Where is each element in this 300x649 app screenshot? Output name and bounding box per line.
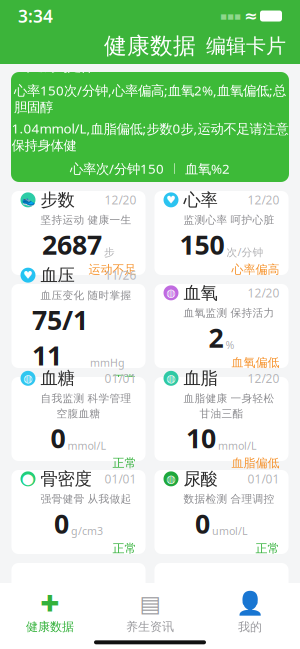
staticText: 全身检查 <box>40 582 108 604</box>
staticText: 0 <box>195 506 210 541</box>
staticText: 步数 <box>40 189 74 210</box>
button[interactable]: ◍ <box>154 377 288 461</box>
staticText: 10 <box>186 420 216 456</box>
staticText: 正常 <box>112 541 136 556</box>
staticText: 01/01 <box>104 471 136 487</box>
button[interactable]: ♥ <box>11 284 145 368</box>
staticText: 正常 <box>112 456 136 470</box>
staticText: ◍ <box>23 372 32 384</box>
staticText: 健康数据 <box>26 619 74 634</box>
staticText: 正常 <box>255 541 279 556</box>
staticText: 正常 <box>112 373 136 387</box>
staticText: 12/20 <box>104 192 136 208</box>
staticText: 血氧%2 <box>185 160 230 177</box>
staticText: 健康数据 <box>104 32 196 60</box>
staticText: 150 <box>179 227 224 262</box>
staticText: 数据检测 合理调控 <box>183 492 274 506</box>
button[interactable] <box>154 563 288 603</box>
staticText: ♥ <box>166 194 176 206</box>
button[interactable]: ▤ <box>100 585 200 640</box>
staticText: mmHg <box>90 356 125 370</box>
staticText: 坚持运动 健康一生 <box>40 213 131 227</box>
staticText: 👟 <box>21 194 34 206</box>
staticText: ▪▪▪ <box>220 10 241 22</box>
staticText: 心率次/分钟150 <box>70 160 164 177</box>
staticText: 0 <box>50 420 65 456</box>
staticText: 3:34 <box>18 4 53 27</box>
staticText: ✚ <box>40 591 59 616</box>
button[interactable]: ⬤ <box>11 470 145 554</box>
staticText: 心率 <box>183 189 217 210</box>
staticText: 2687 <box>42 227 102 262</box>
button[interactable]: 全身检查 <box>11 563 145 603</box>
staticText: 血脂 <box>183 368 217 389</box>
staticText: ♥ <box>23 269 33 281</box>
staticText: 12/20 <box>247 370 279 386</box>
button[interactable]: ◍ <box>154 470 288 554</box>
staticText: 01/01 <box>104 370 136 386</box>
button[interactable]: 编辑卡片 <box>192 28 300 64</box>
staticText: % <box>225 338 234 352</box>
staticText: 我的 <box>238 620 262 634</box>
staticText: ≈ <box>244 7 257 25</box>
staticText: 骨密度 <box>40 468 91 489</box>
staticText: 编辑卡片 <box>206 34 286 58</box>
staticText: 75/111 <box>32 302 88 373</box>
button[interactable]: 👤 <box>200 585 300 640</box>
button[interactable]: ◍ <box>11 377 145 461</box>
staticText: 01/01 <box>247 471 279 487</box>
staticText: 血压变化 随时掌握 <box>40 289 131 302</box>
staticText: 12/20 <box>247 192 279 208</box>
staticText: 空腹血糖 <box>56 407 100 420</box>
staticText: 血氧监测 保持活力 <box>183 306 274 320</box>
staticText: 2 <box>208 320 223 355</box>
staticText: 尿酸 <box>183 468 217 489</box>
staticText: 运动不足 <box>88 262 136 277</box>
staticText: 血糖 <box>40 368 74 389</box>
staticText: 血脂偏低 <box>231 456 279 470</box>
staticText: 1.04mmol/L,血脂偏低;步数0步,运动不足请注意保持身体健 <box>11 120 288 154</box>
staticText: 11/26 <box>104 267 136 283</box>
staticText: 心率150次/分钟,心率偏高;血氧2%,血氧偏低;总胆固醇 <box>14 81 286 116</box>
staticText: ◍ <box>166 372 175 384</box>
staticText: 自我监测 科学管理 <box>40 392 131 405</box>
staticText: 血脂健康 一身轻松 <box>183 392 274 405</box>
staticText: 监测心率 呵护心脏 <box>183 213 274 227</box>
button[interactable]: ♥ <box>154 191 288 275</box>
staticText: 血氧偏低 <box>231 355 279 370</box>
button[interactable]: ◍ <box>154 284 288 368</box>
button[interactable]: 👟 <box>11 191 145 275</box>
staticText: 次/分钟 <box>226 245 263 259</box>
staticText: umol/L <box>212 524 248 538</box>
staticText: 强骨健骨 从我做起 <box>40 492 131 506</box>
staticText: 血氧 <box>183 282 217 303</box>
staticText: g/cm3 <box>71 524 103 538</box>
button[interactable]: ✚ <box>0 585 100 640</box>
staticText: 健康提醒 <box>25 53 101 75</box>
staticText: ◍ <box>166 287 175 299</box>
staticText: ◍ <box>166 473 175 485</box>
staticText: 步 <box>104 246 115 259</box>
staticText: ⬤ <box>22 473 34 485</box>
staticText: 养生资讯 <box>126 619 174 634</box>
staticText: 0 <box>54 506 69 541</box>
staticText: 👤 <box>236 591 264 617</box>
staticText: 心率偏高 <box>231 262 279 277</box>
staticText: 血压 <box>40 264 74 286</box>
staticText: 12/20 <box>247 285 279 301</box>
staticText: ▤ <box>139 591 160 616</box>
staticText: mmol/L <box>218 438 257 453</box>
staticText: mmol/L <box>67 438 106 453</box>
staticText: 甘油三酯 <box>199 407 243 420</box>
